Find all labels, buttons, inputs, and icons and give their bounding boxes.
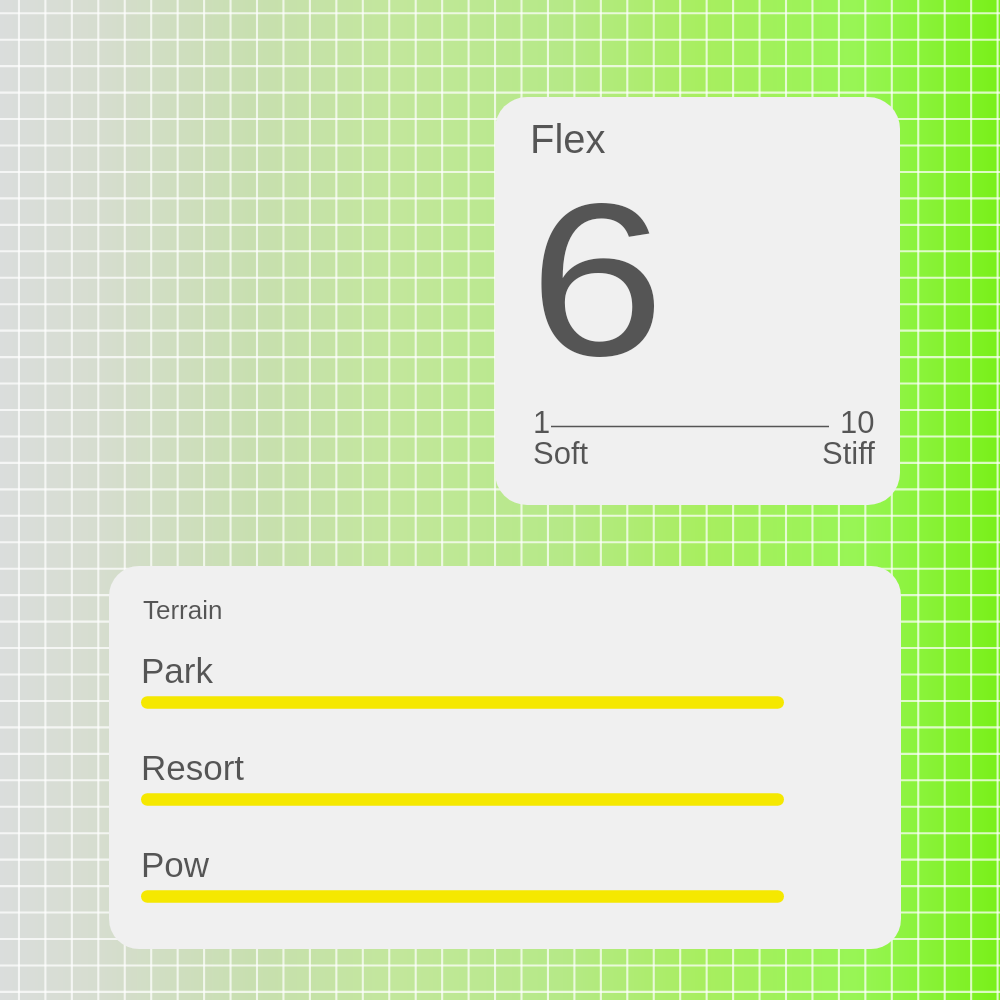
staticText: 10 <box>840 405 875 440</box>
staticText: Soft <box>533 436 589 471</box>
staticText: Terrain <box>143 595 223 624</box>
button[interactable]: Pow <box>141 845 784 906</box>
staticText: Flex <box>530 117 606 162</box>
button[interactable]: Terrain <box>109 566 901 949</box>
button[interactable]: Resort <box>141 748 784 809</box>
staticText: Pow <box>141 845 210 884</box>
staticText: Park <box>141 651 213 690</box>
staticText: Stiff <box>822 436 875 471</box>
other: Flex scale from 1 to 10 <box>551 417 840 429</box>
button[interactable]: Flex <box>495 97 900 505</box>
button[interactable]: Park <box>141 651 784 712</box>
staticText: 1 <box>533 405 551 440</box>
staticText: Resort <box>141 748 245 787</box>
staticText: 6 <box>529 159 665 401</box>
